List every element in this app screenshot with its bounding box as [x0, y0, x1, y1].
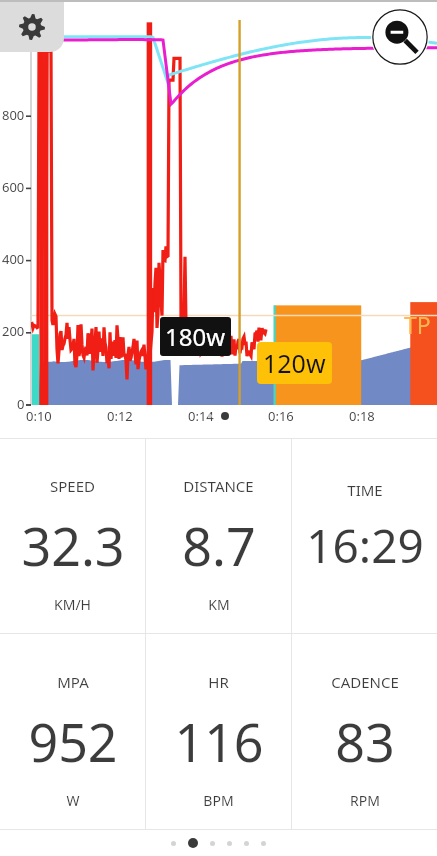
staticText: KM/H	[54, 595, 91, 614]
button[interactable]: 120w	[263, 346, 326, 380]
staticText: 952	[28, 706, 118, 777]
staticText: 200	[2, 322, 25, 340]
staticText: 116	[174, 706, 264, 777]
staticText: W	[66, 791, 80, 810]
staticText: MPA	[57, 672, 89, 692]
staticText: 800	[2, 106, 25, 124]
staticText: 0:18	[349, 407, 375, 425]
staticText: TP	[404, 309, 431, 340]
staticText: 0:14	[188, 407, 214, 425]
staticText: 16:29	[306, 514, 424, 577]
staticText: HR	[208, 672, 229, 692]
button[interactable]: 180w	[165, 320, 226, 353]
staticText: 8.7	[182, 510, 256, 581]
staticText: 400	[2, 250, 25, 268]
button[interactable]: DISTANCE	[146, 439, 291, 633]
staticText: 83	[335, 706, 395, 777]
staticText: 0:10	[26, 407, 52, 425]
staticText: 0:16	[268, 407, 294, 425]
staticText: SPEED	[50, 476, 95, 496]
staticText: RPM	[350, 791, 380, 810]
staticText: DISTANCE	[183, 476, 254, 496]
staticText: 120w	[263, 346, 326, 380]
staticText: 180w	[165, 320, 226, 353]
button[interactable]: SPEED	[0, 439, 145, 633]
staticText: 600	[2, 178, 25, 196]
button[interactable]: Settings	[0, 2, 64, 52]
staticText: CADENCE	[331, 672, 399, 692]
button[interactable]: HR	[146, 634, 291, 829]
button[interactable]: TIME	[292, 439, 437, 633]
staticText: TIME	[347, 480, 383, 500]
button[interactable]: CADENCE	[292, 634, 437, 829]
button[interactable]: Zoom out	[371, 8, 429, 66]
staticText: BPM	[203, 791, 234, 810]
staticText: 32.3	[21, 510, 125, 581]
staticText: 0	[17, 395, 25, 413]
button[interactable]: MPA	[0, 634, 145, 829]
staticText: KM	[208, 595, 230, 614]
staticText: 0:12	[107, 407, 133, 425]
